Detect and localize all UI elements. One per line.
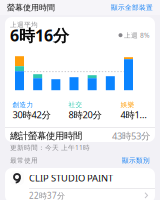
- staticText: 30時42分: [12, 108, 50, 121]
- button[interactable]: 顯示類別: [122, 156, 150, 165]
- staticText: 8時20分: [68, 108, 101, 121]
- staticText: 6時16分: [10, 24, 69, 46]
- staticText: CLIP STUDIO PAINT: [29, 172, 113, 184]
- staticText: 22時37分: [29, 190, 65, 200]
- staticText: 顯示全部裝置: [111, 3, 153, 12]
- staticText: 最常使用: [10, 156, 38, 165]
- staticText: 4時14分: [120, 108, 152, 121]
- button[interactable]: CLIP STUDIO PAINT: [5, 168, 155, 200]
- staticText: 上週 8%: [124, 31, 150, 40]
- staticText: 螢幕使用時間: [7, 3, 55, 12]
- staticText: 顯示類別: [122, 156, 150, 165]
- staticText: 43時53分: [112, 130, 150, 142]
- staticText: 上週平均: [10, 21, 38, 29]
- staticText: 更新時間：今天 上午11時: [10, 143, 90, 152]
- staticText: 社交: [68, 101, 82, 109]
- staticText: 娛樂: [120, 101, 134, 109]
- staticText: 創造力: [12, 101, 33, 109]
- button[interactable]: 顯示全部裝置: [111, 3, 153, 12]
- staticText: 總計螢幕使用時間: [10, 130, 82, 142]
